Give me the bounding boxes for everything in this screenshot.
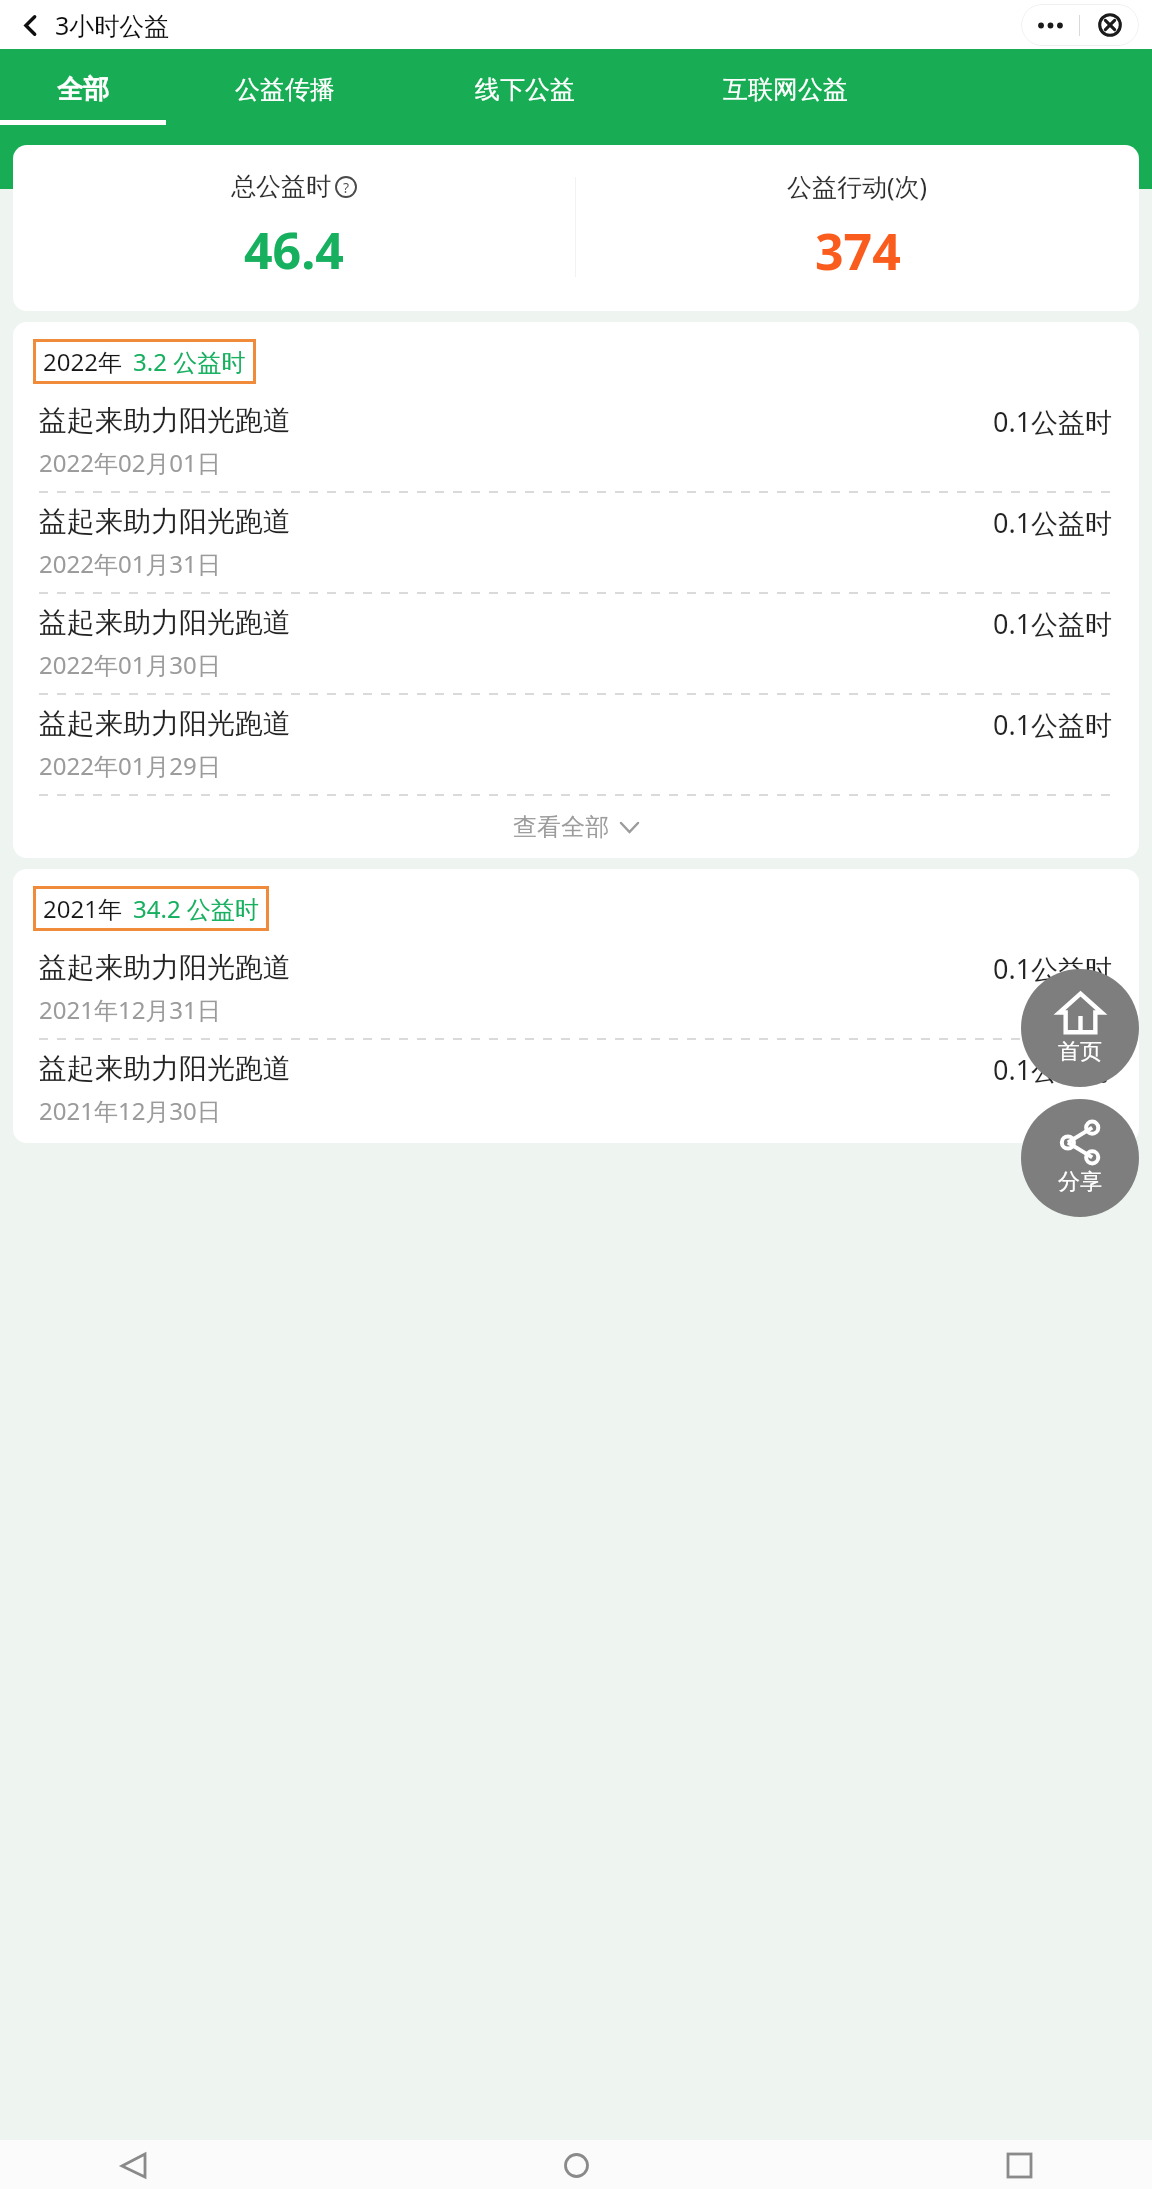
- button[interactable]: Close: [1080, 4, 1139, 46]
- button[interactable]: Share: [1021, 1099, 1139, 1217]
- button[interactable]: Home: [553, 2142, 599, 2188]
- button[interactable]: Recents: [996, 2142, 1042, 2188]
- staticText: 2022年: [43, 345, 122, 378]
- staticText: 374: [815, 217, 901, 285]
- button[interactable]: 益起来助力阳光跑道: [13, 1040, 1139, 1139]
- staticText: 互联网公益: [723, 74, 848, 105]
- button[interactable]: 全部: [0, 49, 165, 129]
- staticText: 分享: [1058, 1168, 1102, 1196]
- staticText: 46.4: [244, 216, 344, 284]
- staticText: 全部: [57, 73, 109, 106]
- button[interactable]: 2021年: [43, 892, 259, 925]
- staticText: 查看全部: [513, 812, 609, 842]
- staticText: 2022年01月30日: [39, 648, 221, 681]
- staticText: 2021年12月30日: [39, 1094, 221, 1127]
- button[interactable]: Back: [12, 7, 48, 43]
- staticText: 益起来助力阳光跑道: [39, 950, 291, 985]
- staticText: ?: [343, 178, 350, 197]
- staticText: 2022年02月01日: [39, 446, 221, 479]
- staticText: 益起来助力阳光跑道: [39, 403, 291, 438]
- button[interactable]: 总公益时: [13, 171, 575, 284]
- button[interactable]: More options: [1021, 4, 1079, 46]
- button[interactable]: 2022年: [43, 345, 246, 378]
- staticText: 公益传播: [235, 74, 335, 105]
- staticText: 3.2 公益时: [133, 345, 246, 378]
- staticText: 0.1公益时: [993, 605, 1113, 642]
- button[interactable]: 查看全部: [13, 796, 1139, 858]
- staticText: 首页: [1058, 1038, 1102, 1066]
- staticText: 0.1公益时: [993, 706, 1113, 743]
- button[interactable]: 益起来助力阳光跑道: [13, 392, 1139, 493]
- staticText: 3小时公益: [55, 8, 170, 42]
- staticText: 益起来助力阳光跑道: [39, 1051, 291, 1086]
- button[interactable]: 益起来助力阳光跑道: [13, 594, 1139, 695]
- staticText: 2022年01月31日: [39, 547, 221, 580]
- staticText: 0.1公益时: [993, 1051, 1113, 1088]
- staticText: 2022年01月29日: [39, 749, 221, 782]
- staticText: 益起来助力阳光跑道: [39, 706, 291, 741]
- staticText: 0.1公益时: [993, 504, 1113, 541]
- staticText: 2021年: [43, 892, 122, 925]
- button[interactable]: 益起来助力阳光跑道: [13, 493, 1139, 594]
- button[interactable]: Back: [110, 2142, 156, 2188]
- staticText: 益起来助力阳光跑道: [39, 605, 291, 640]
- button[interactable]: 互联网公益: [645, 49, 925, 129]
- staticText: 线下公益: [475, 74, 575, 105]
- staticText: 总公益时: [231, 171, 331, 202]
- staticText: 公益行动(次): [787, 169, 928, 203]
- button[interactable]: Home: [1021, 969, 1139, 1087]
- button[interactable]: 益起来助力阳光跑道: [13, 939, 1139, 1040]
- staticText: 益起来助力阳光跑道: [39, 504, 291, 539]
- button[interactable]: 公益行动(次): [576, 169, 1139, 285]
- button[interactable]: 益起来助力阳光跑道: [13, 695, 1139, 796]
- staticText: 2021年12月31日: [39, 993, 221, 1026]
- button[interactable]: 公益传播: [165, 49, 405, 129]
- staticText: 0.1公益时: [993, 950, 1113, 987]
- button[interactable]: 线下公益: [405, 49, 645, 129]
- staticText: 0.1公益时: [993, 403, 1113, 440]
- staticText: 34.2 公益时: [133, 892, 259, 925]
